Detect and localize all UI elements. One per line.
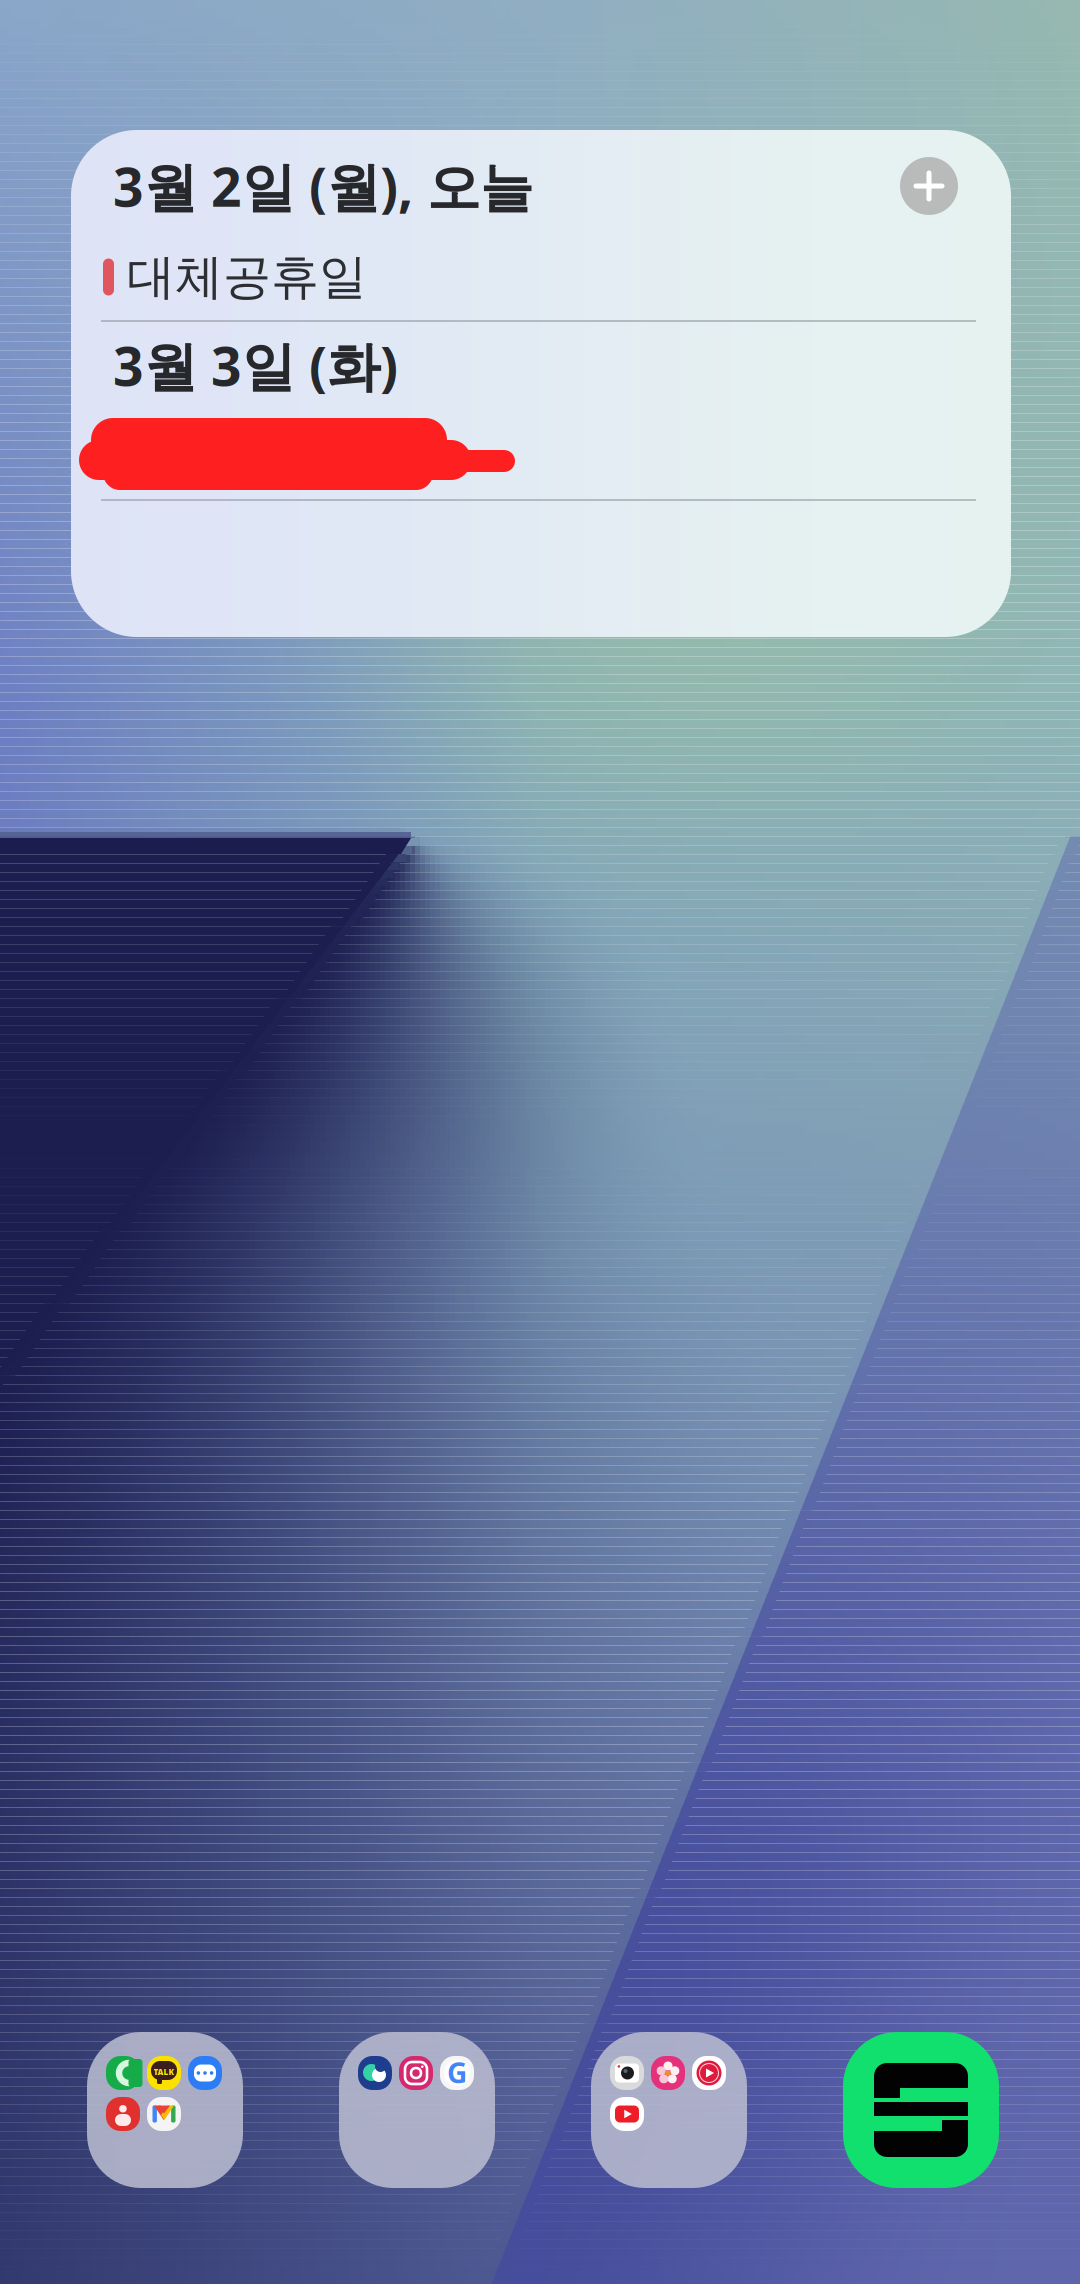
button[interactable]: Sleep tracker — [843, 2032, 999, 2188]
button[interactable]: Media folder — [591, 2032, 747, 2188]
staticText: TALK — [153, 2066, 173, 2077]
staticText: 3월 3일 (화) — [113, 330, 398, 401]
button[interactable]: Communication folder — [87, 2032, 243, 2188]
button[interactable]: Web folder — [339, 2032, 495, 2188]
staticText: G — [447, 2054, 467, 2091]
button[interactable]: Add event — [900, 157, 958, 215]
staticText: 대체공휴일 — [127, 247, 367, 306]
staticText: 3월 2일 (월), 오늘 — [113, 151, 533, 221]
